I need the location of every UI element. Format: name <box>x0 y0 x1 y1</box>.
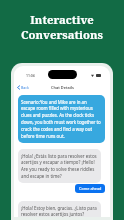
staticText: ¡Hola! ¿Estás listo para resolver estos … <box>21 153 98 179</box>
staticText: Come ahead <box>79 186 102 191</box>
staticText: Back <box>21 85 29 90</box>
staticText: 11:04 <box>26 73 35 78</box>
staticText: Chat Details <box>51 85 74 90</box>
staticText: Scenario:You and Mike are in an escape r… <box>21 99 102 139</box>
staticText: Interactive <box>30 12 94 27</box>
staticText: Conversations <box>21 27 103 42</box>
button[interactable]: Come ahead <box>75 184 105 193</box>
staticText: ¡Hola! Estoy bien, gracias. ¿Listo para … <box>21 205 98 217</box>
button[interactable]: Back <box>14 83 32 92</box>
